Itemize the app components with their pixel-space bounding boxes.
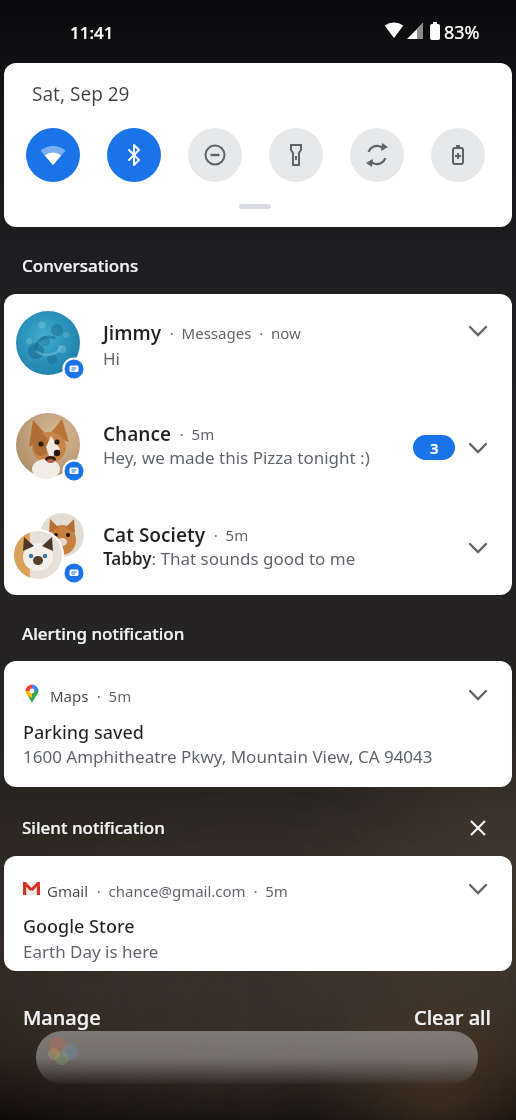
staticText: Conversations: [22, 254, 139, 277]
staticText: 83%: [444, 20, 480, 45]
button[interactable]: [4, 495, 512, 595]
button[interactable]: [269, 128, 323, 182]
staticText: · Messages · now: [162, 323, 301, 343]
staticText: · 5m: [172, 424, 215, 444]
staticText: Clear all: [414, 1004, 491, 1031]
staticText: Tabby: That sounds good to me: [103, 547, 356, 570]
button[interactable]: [188, 128, 242, 182]
button[interactable]: [4, 294, 512, 394]
staticText: Cat Society: [103, 522, 206, 548]
staticText: Maps: [50, 686, 89, 706]
staticText: Silent notification: [22, 816, 165, 839]
staticText: Sat, Sep 29: [32, 81, 130, 107]
button[interactable]: Gmail: [4, 856, 512, 971]
staticText: 1600 Amphitheatre Pkwy, Mountain View, C…: [23, 745, 433, 768]
staticText: · 5m: [206, 525, 249, 545]
staticText: 11:41: [70, 21, 114, 44]
button[interactable]: [4, 394, 512, 495]
staticText: Gmail: [47, 881, 89, 901]
button[interactable]: Clear all: [402, 998, 506, 1042]
staticText: · 5m: [89, 686, 132, 706]
staticText: Google Store: [23, 914, 135, 939]
staticText: · chance@gmail.com · 5m: [89, 881, 288, 901]
staticText: Parking saved: [23, 720, 144, 745]
staticText: Hi: [103, 347, 120, 370]
button[interactable]: Maps: [4, 661, 512, 787]
staticText: Earth Day is here: [23, 940, 159, 963]
staticText: Alerting notification: [22, 622, 185, 645]
staticText: 3: [430, 438, 439, 458]
button[interactable]: [107, 128, 161, 182]
staticText: Manage: [23, 1004, 101, 1031]
button[interactable]: [462, 812, 494, 844]
staticText: Hey, we made this Pizza tonight :): [103, 446, 370, 469]
button[interactable]: Manage: [12, 998, 112, 1042]
button[interactable]: [26, 128, 80, 182]
staticText: Chance: [103, 421, 172, 447]
button[interactable]: [350, 128, 404, 182]
staticText: Jimmy: [103, 320, 162, 346]
button[interactable]: [431, 128, 485, 182]
